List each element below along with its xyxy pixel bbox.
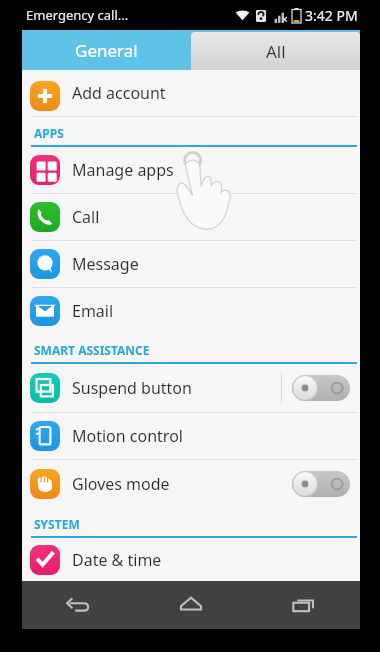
button[interactable]: All — [191, 32, 360, 70]
staticText: SMART ASSISTANCE — [34, 342, 150, 358]
button[interactable]: Date & time — [22, 538, 360, 581]
button[interactable]: Message — [22, 241, 360, 287]
staticText: Manage apps — [72, 159, 348, 181]
staticText: Date & time — [72, 549, 348, 571]
staticText: Gloves mode — [72, 473, 282, 495]
staticText: Email — [72, 300, 348, 322]
button[interactable]: Add account — [22, 70, 360, 116]
staticText: Add account — [72, 82, 348, 104]
staticText: Call — [72, 206, 348, 228]
button[interactable]: Email — [22, 288, 360, 334]
staticText: APPS — [34, 125, 64, 141]
staticText: Suspend button — [72, 377, 281, 399]
button[interactable]: Motion control — [22, 413, 360, 459]
button[interactable]: Suspend button — [22, 364, 360, 412]
staticText: Message — [72, 253, 348, 275]
button[interactable]: Home — [134, 581, 247, 629]
button[interactable]: Recent apps — [247, 581, 360, 629]
button[interactable]: Back — [22, 581, 134, 629]
button[interactable]: Manage apps — [22, 147, 360, 193]
staticText: 3:42 PM — [305, 6, 358, 25]
button[interactable]: Gloves mode — [22, 460, 360, 508]
staticText: Emergency call... — [26, 6, 129, 24]
staticText: SYSTEM — [34, 516, 80, 532]
staticText: Motion control — [72, 425, 348, 447]
staticText: All — [266, 40, 286, 63]
button[interactable]: Call — [22, 194, 360, 240]
button[interactable]: General — [22, 30, 191, 70]
staticText: General — [75, 39, 138, 62]
